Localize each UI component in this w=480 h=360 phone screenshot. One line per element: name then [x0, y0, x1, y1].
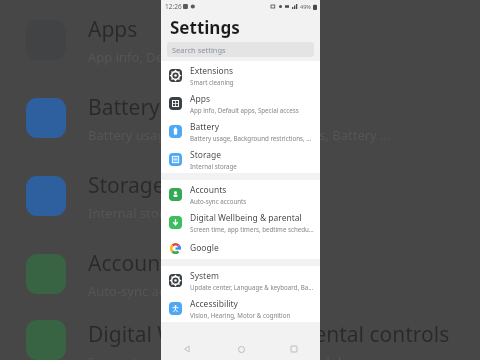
staticText: 49%: [300, 3, 311, 10]
button[interactable]: Google: [161, 236, 320, 259]
staticText: Accounts: [88, 249, 178, 278]
staticText: Search settings: [172, 45, 226, 55]
staticText: Battery usage, Background restrictions, …: [190, 134, 314, 142]
staticText: Settings: [170, 16, 240, 39]
staticText: Internal storage: [190, 162, 237, 170]
button[interactable]: Accounts: [161, 180, 320, 208]
button[interactable]: Back: [179, 341, 195, 357]
staticText: Battery: [88, 93, 160, 122]
staticText: Screen time, app timers, bedtime schedul…: [88, 353, 355, 360]
button[interactable]: Extensions: [161, 61, 320, 89]
button[interactable]: System: [161, 266, 320, 294]
staticText: Internal storage: [88, 204, 187, 222]
staticText: Auto-sync accounts: [190, 197, 247, 205]
staticText: Smart cleaning: [190, 78, 234, 86]
button[interactable]: Home: [233, 341, 249, 357]
staticText: App info, Default apps, Special access: [190, 106, 299, 114]
staticText: Battery: [190, 121, 220, 133]
staticText: Apps: [190, 93, 210, 105]
button[interactable]: Accessibility: [161, 294, 320, 322]
staticText: Accessibility: [190, 298, 238, 310]
staticText: Digital Wellbeing & parental controls: [190, 212, 314, 224]
staticText: Accounts: [190, 184, 227, 196]
button[interactable]: Digital Wellbeing & parental controls: [161, 208, 320, 236]
staticText: Battery usage, Background restrictions, …: [88, 126, 391, 144]
staticText: Screen time, app timers, bedtime schedul…: [190, 225, 314, 233]
staticText: Apps: [88, 15, 138, 44]
staticText: System: [190, 270, 219, 282]
button[interactable]: Storage: [161, 145, 320, 173]
staticText: App info, Default apps, Special access: [88, 48, 317, 66]
staticText: Digital Wellbeing & parental controls: [88, 320, 450, 349]
staticText: Vision, Hearing, Motor & cognition: [190, 311, 291, 319]
button[interactable]: Battery: [161, 117, 320, 145]
button[interactable]: Search settings: [167, 42, 314, 57]
staticText: Storage: [88, 171, 165, 200]
staticText: Auto-sync accounts: [88, 282, 207, 300]
staticText: Storage: [190, 149, 222, 161]
button[interactable]: Apps: [161, 89, 320, 117]
staticText: Google: [190, 242, 219, 254]
staticText: Update center, Language & keyboard, Back…: [190, 283, 314, 291]
button[interactable]: Recents: [286, 341, 302, 357]
staticText: 12:26: [165, 2, 182, 11]
staticText: Extensions: [190, 65, 234, 77]
